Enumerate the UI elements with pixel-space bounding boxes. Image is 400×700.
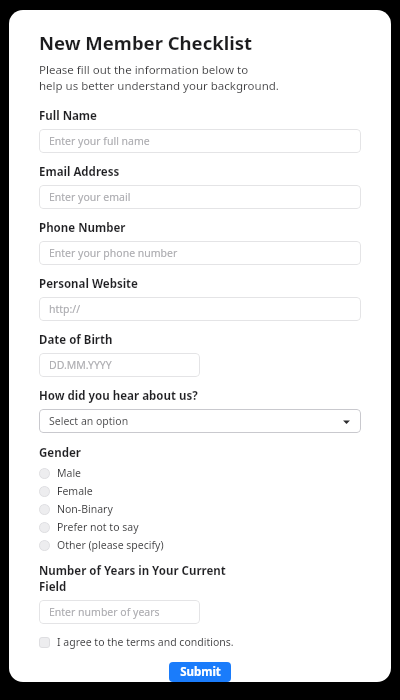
- staticText: help us better understand your backgroun…: [39, 78, 279, 94]
- staticText: Field: [39, 579, 67, 595]
- staticText: Please fill out the information below to: [39, 62, 249, 78]
- staticText: Full Name: [39, 108, 97, 124]
- staticText: Other (please specify): [57, 538, 164, 552]
- staticText: Enter your full name: [49, 134, 150, 148]
- button[interactable]: Agree to the terms and conditions: [39, 633, 361, 651]
- button[interactable]: Prefer not to say: [39, 518, 361, 536]
- button[interactable]: Submit: [169, 662, 231, 682]
- button[interactable]: Enter your phone number: [39, 241, 361, 265]
- staticText: How did you hear about us?: [39, 388, 198, 404]
- staticText: Female: [57, 484, 93, 498]
- button[interactable]: Non-Binary: [39, 500, 361, 518]
- staticText: Enter number of years: [49, 605, 160, 619]
- staticText: Non-Binary: [57, 502, 113, 516]
- staticText: Enter your phone number: [49, 246, 178, 260]
- staticText: Number of Years in Your Current: [39, 563, 226, 579]
- staticText: Gender: [39, 445, 81, 461]
- button[interactable]: Female: [39, 482, 361, 500]
- other: Open options: [342, 417, 351, 426]
- staticText: Phone Number: [39, 220, 126, 236]
- staticText: Date of Birth: [39, 332, 113, 348]
- button[interactable]: Other (please specify): [39, 536, 361, 554]
- staticText: Email Address: [39, 164, 120, 180]
- staticText: Personal Website: [39, 276, 138, 292]
- staticText: http://: [49, 302, 81, 316]
- button[interactable]: Enter your email: [39, 185, 361, 209]
- button[interactable]: DD.MM.YYYY: [39, 353, 200, 377]
- staticText: Submit: [180, 664, 221, 680]
- staticText: Select an option: [49, 414, 342, 428]
- staticText: Male: [57, 466, 82, 480]
- button[interactable]: http://: [39, 297, 361, 321]
- staticText: New Member Checklist: [39, 30, 253, 55]
- other: Agree to the terms and conditions: [39, 637, 50, 648]
- button[interactable]: Male: [39, 464, 361, 482]
- staticText: I agree to the terms and conditions.: [57, 635, 234, 649]
- staticText: DD.MM.YYYY: [49, 358, 112, 372]
- button[interactable]: Enter number of years: [39, 600, 200, 624]
- button[interactable]: Select an option: [39, 409, 361, 433]
- staticText: Prefer not to say: [57, 520, 139, 534]
- button[interactable]: Enter your full name: [39, 129, 361, 153]
- staticText: Enter your email: [49, 190, 131, 204]
